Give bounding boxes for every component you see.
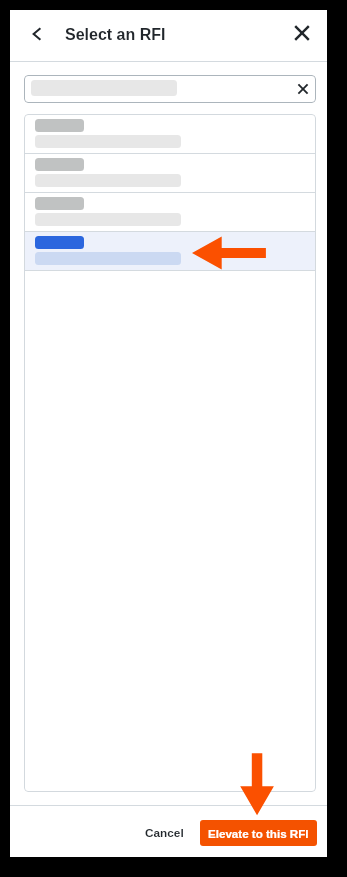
button[interactable]	[24, 232, 316, 270]
button[interactable]: Back	[23, 20, 51, 48]
button[interactable]: Clear search	[24, 75, 316, 103]
staticText: Cancel	[145, 826, 184, 839]
button[interactable]	[24, 115, 316, 153]
staticText: Elevate to this RFI	[208, 827, 309, 840]
button[interactable]	[24, 193, 316, 231]
button[interactable]: Clear search	[293, 79, 313, 99]
button[interactable]: Elevate to this RFI	[200, 820, 317, 846]
button[interactable]	[24, 154, 316, 192]
button[interactable]: Cancel	[133, 817, 196, 848]
button[interactable]: Close	[288, 19, 316, 47]
staticText: Select an RFI	[65, 26, 166, 44]
